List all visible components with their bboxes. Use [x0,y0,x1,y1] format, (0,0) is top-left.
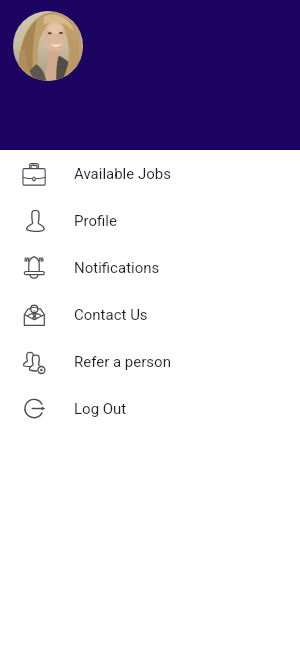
staticText: Profile [74,212,117,230]
staticText: Notifications [74,259,160,277]
button[interactable]: Profile photo [13,11,83,81]
staticText: Refer a person [74,353,171,371]
button[interactable]: Available Jobs [0,150,300,197]
button[interactable]: Refer a person [0,338,300,385]
button[interactable]: Profile [0,197,300,244]
staticText: Contact Us [74,306,148,324]
staticText: Available Jobs [74,165,171,183]
button[interactable]: Log Out [0,385,300,432]
button[interactable]: Contact Us [0,291,300,338]
button[interactable]: Notifications [0,244,300,291]
staticText: Log Out [74,400,127,418]
